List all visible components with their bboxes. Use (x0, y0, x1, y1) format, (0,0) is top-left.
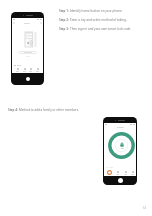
button[interactable]: Tab (29, 68, 32, 72)
staticText: Step 2: (59, 18, 69, 22)
staticText: Identify home button on your phone. (70, 9, 123, 13)
button[interactable]: Tab (23, 68, 26, 72)
button[interactable]: Home (107, 170, 112, 175)
button[interactable]: Back (12, 21, 43, 24)
button[interactable]: Tab (16, 68, 19, 72)
staticText: Method to add a family or other members. (19, 108, 80, 112)
button[interactable] (18, 51, 37, 54)
staticText: Step 1: (59, 9, 69, 13)
button[interactable]: Tab (36, 68, 39, 72)
staticText: 14 (143, 206, 146, 210)
staticText: Enter a city and select method of taking… (70, 18, 127, 22)
button[interactable]: Tab (124, 171, 127, 175)
staticText: Then sign in and your own smart lock cod… (70, 27, 132, 31)
staticText: Step 3: (59, 27, 69, 31)
button[interactable]: Tab (131, 171, 134, 175)
button[interactable]: Tab (116, 171, 119, 175)
button[interactable]: Unlock (108, 132, 135, 159)
staticText: Step 4: (8, 108, 18, 112)
